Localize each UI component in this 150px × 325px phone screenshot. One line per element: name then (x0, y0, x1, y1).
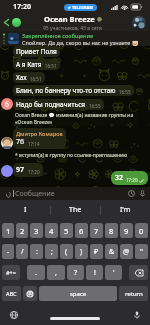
button[interactable]: 9 (120, 223, 133, 238)
staticText: ) (80, 247, 83, 257)
staticText: The (69, 205, 82, 215)
button[interactable]: Emoji (23, 286, 37, 301)
button[interactable]: : (30, 244, 43, 259)
staticText: I (24, 205, 27, 215)
staticText: 17:20 (13, 2, 31, 12)
button[interactable]: 5 (60, 223, 73, 238)
button[interactable]: , (47, 265, 65, 280)
staticText: Блин, по баннеру что-то отстаю (16, 86, 116, 95)
button[interactable]: The (51, 200, 100, 220)
button[interactable]: 6 (75, 223, 88, 238)
staticText: #+= (6, 269, 16, 276)
button[interactable]: #+= (2, 265, 20, 280)
staticText: 2 (20, 226, 25, 236)
staticText: space (70, 290, 87, 298)
button[interactable]: Back (1, 17, 12, 28)
button[interactable]: 1 (2, 223, 14, 238)
staticText: б (5, 100, 9, 109)
staticText: 0 (139, 226, 144, 236)
button[interactable]: return (119, 286, 148, 301)
staticText: 9 (124, 226, 129, 236)
staticText: TELEGRAM (72, 5, 94, 10)
staticText: ; (51, 247, 53, 257)
staticText: * вступил(а) в группу по ссылке-приглаше… (15, 152, 128, 159)
button[interactable]: Record voice message (137, 188, 148, 199)
staticText: ABC (6, 290, 17, 297)
button[interactable]: space (39, 286, 117, 301)
staticText: 17:20 (28, 169, 40, 175)
staticText: Ocean Breeze 💬 изменил(а) название групп… (15, 112, 136, 125)
staticText: - (7, 247, 10, 257)
staticText: 17:20 (126, 177, 138, 183)
staticText: 5 (64, 226, 69, 236)
staticText: 76 (16, 137, 25, 147)
button[interactable]: Закреплённое сообщение (0, 31, 150, 46)
button[interactable]: ABC (2, 286, 21, 301)
button[interactable]: Dictation (132, 310, 141, 319)
staticText: @ (123, 247, 130, 257)
button[interactable]: . (27, 265, 45, 280)
staticText: 16:51 (45, 63, 57, 69)
staticText: ! (94, 268, 96, 278)
staticText: . (35, 268, 37, 278)
button[interactable]: ? (67, 265, 84, 280)
staticText: 7 (94, 226, 99, 236)
staticText: Надо бы подначиться (16, 100, 86, 109)
staticText: 6 (79, 226, 84, 236)
staticText: return (125, 290, 143, 298)
staticText: 16:55 (119, 89, 131, 95)
staticText: 97 (16, 165, 25, 175)
staticText: ' (113, 268, 115, 278)
staticText: Ocean Breeze (44, 14, 95, 24)
button[interactable]: Group avatar (132, 16, 146, 30)
button[interactable]: Schedule message (126, 188, 137, 199)
button[interactable]: / (16, 244, 28, 259)
staticText: Дмитро Комаров (16, 130, 63, 137)
staticText: 3 (34, 226, 39, 236)
staticText: А я Катя (16, 60, 42, 69)
staticText: 17:14 (28, 141, 40, 147)
button[interactable]: I (0, 200, 50, 220)
staticText: & (109, 247, 115, 257)
staticText: I'm (120, 205, 131, 215)
button[interactable]: 4 (45, 223, 58, 238)
button[interactable]: - (2, 244, 14, 259)
staticText: 95 участников, 43 в сети (43, 25, 102, 31)
button[interactable]: & (105, 244, 118, 259)
button[interactable]: 8 (105, 223, 118, 238)
staticText: : (36, 247, 38, 257)
staticText: Спойлер. Да да, скоро вы нас не узнаете … (22, 39, 139, 46)
staticText: 16:55 (89, 103, 101, 109)
staticText: Хах (16, 73, 27, 82)
button[interactable]: ₽ (90, 244, 103, 259)
button[interactable]: ( (60, 244, 73, 259)
staticText: Привет Поля (16, 47, 57, 56)
staticText: ( (65, 247, 68, 257)
staticText: 8 (109, 226, 114, 236)
staticText: 32 (115, 173, 124, 183)
button[interactable]: 2 (16, 223, 28, 238)
staticText: Сообщение (15, 189, 55, 199)
button[interactable]: ) (75, 244, 88, 259)
button[interactable]: ! (86, 265, 103, 280)
staticText: 4 (49, 226, 54, 236)
button[interactable]: 0 (135, 223, 148, 238)
button[interactable]: ' (105, 265, 122, 280)
button[interactable]: 7 (90, 223, 103, 238)
staticText: , (55, 268, 57, 278)
button[interactable]: ; (45, 244, 58, 259)
staticText: / (21, 247, 24, 257)
staticText: " (140, 247, 143, 257)
button[interactable]: Attach file (3, 189, 13, 199)
staticText: 1 (6, 226, 11, 236)
staticText: Закреплённое сообщение (22, 32, 94, 39)
staticText: ? (74, 268, 78, 278)
button[interactable]: @ (120, 244, 133, 259)
button[interactable]: Change keyboard language (9, 310, 18, 319)
button[interactable]: " (135, 244, 148, 259)
button[interactable]: Backspace (129, 265, 148, 280)
button[interactable]: I'm (101, 200, 150, 220)
staticText: 16:51 (30, 76, 42, 82)
staticText: ₽ (94, 247, 99, 257)
button[interactable]: 3 (30, 223, 43, 238)
